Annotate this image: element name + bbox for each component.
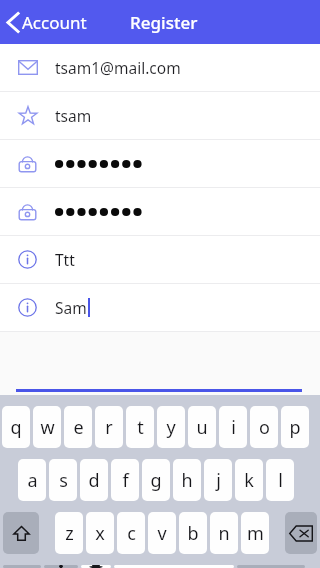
button[interactable]: k bbox=[235, 459, 263, 501]
button[interactable]: j bbox=[204, 459, 232, 501]
button[interactable]: Shift bbox=[3, 512, 39, 554]
staticText: r bbox=[105, 415, 113, 440]
staticText: tsam bbox=[55, 105, 92, 126]
staticText: o bbox=[259, 415, 270, 440]
button[interactable]: g bbox=[142, 459, 170, 501]
button[interactable] bbox=[0, 140, 320, 187]
button[interactable]: p bbox=[281, 406, 309, 448]
staticText: Ttt bbox=[55, 249, 75, 270]
staticText: q bbox=[10, 415, 22, 440]
staticText: l bbox=[278, 468, 283, 493]
staticText: i bbox=[231, 415, 236, 440]
button[interactable]: h bbox=[173, 459, 201, 501]
staticText: Register bbox=[130, 11, 198, 34]
button[interactable]: Ttt bbox=[0, 236, 320, 283]
staticText: v bbox=[157, 521, 167, 546]
button[interactable]: Emoji bbox=[44, 565, 78, 568]
button[interactable]: tsam1@mail.com bbox=[0, 44, 320, 91]
staticText: u bbox=[196, 415, 208, 440]
staticText: w bbox=[40, 415, 55, 440]
staticText: f bbox=[122, 468, 129, 493]
staticText: e bbox=[73, 415, 84, 440]
button[interactable]: Sam bbox=[0, 284, 320, 331]
button[interactable]: d bbox=[80, 459, 108, 501]
staticText: x bbox=[95, 521, 105, 546]
button[interactable]: s bbox=[49, 459, 77, 501]
button[interactable]: r bbox=[95, 406, 123, 448]
button[interactable]: m bbox=[241, 512, 269, 554]
button[interactable]: u bbox=[188, 406, 216, 448]
staticText: g bbox=[150, 468, 162, 493]
staticText: c bbox=[127, 521, 136, 546]
staticText: d bbox=[88, 468, 100, 493]
button[interactable]: l bbox=[266, 459, 294, 501]
staticText: n bbox=[218, 521, 230, 546]
staticText: m bbox=[247, 521, 264, 546]
staticText: t bbox=[137, 415, 144, 440]
staticText: s bbox=[59, 468, 68, 493]
button[interactable]: tsam bbox=[0, 92, 320, 139]
staticText: y bbox=[166, 415, 176, 440]
button[interactable]: f bbox=[111, 459, 139, 501]
staticText: b bbox=[187, 521, 199, 546]
staticText: Sam bbox=[55, 297, 87, 318]
staticText: a bbox=[27, 468, 38, 493]
button[interactable]: v bbox=[148, 512, 176, 554]
button[interactable]: Account bbox=[0, 11, 87, 34]
button[interactable]: a bbox=[18, 459, 46, 501]
staticText: k bbox=[244, 468, 254, 493]
staticText: j bbox=[216, 468, 221, 493]
staticText: h bbox=[181, 468, 193, 493]
button[interactable]: z bbox=[55, 512, 83, 554]
staticText: tsam1@mail.com bbox=[55, 57, 181, 78]
staticText: p bbox=[289, 415, 301, 440]
button[interactable]: i bbox=[219, 406, 247, 448]
button[interactable]: w bbox=[33, 406, 61, 448]
button[interactable]: e bbox=[64, 406, 92, 448]
button[interactable]: t bbox=[126, 406, 154, 448]
button[interactable]: x bbox=[86, 512, 114, 554]
button[interactable]: Backspace bbox=[285, 512, 317, 554]
button[interactable]: y bbox=[157, 406, 185, 448]
button[interactable]: q bbox=[2, 406, 30, 448]
button[interactable]: c bbox=[117, 512, 145, 554]
button[interactable]: n bbox=[210, 512, 238, 554]
staticText: z bbox=[65, 521, 74, 546]
button[interactable]: Voice input bbox=[81, 565, 111, 568]
staticText: Account bbox=[22, 11, 87, 34]
button[interactable] bbox=[0, 188, 320, 235]
button[interactable]: o bbox=[250, 406, 278, 448]
button[interactable]: b bbox=[179, 512, 207, 554]
